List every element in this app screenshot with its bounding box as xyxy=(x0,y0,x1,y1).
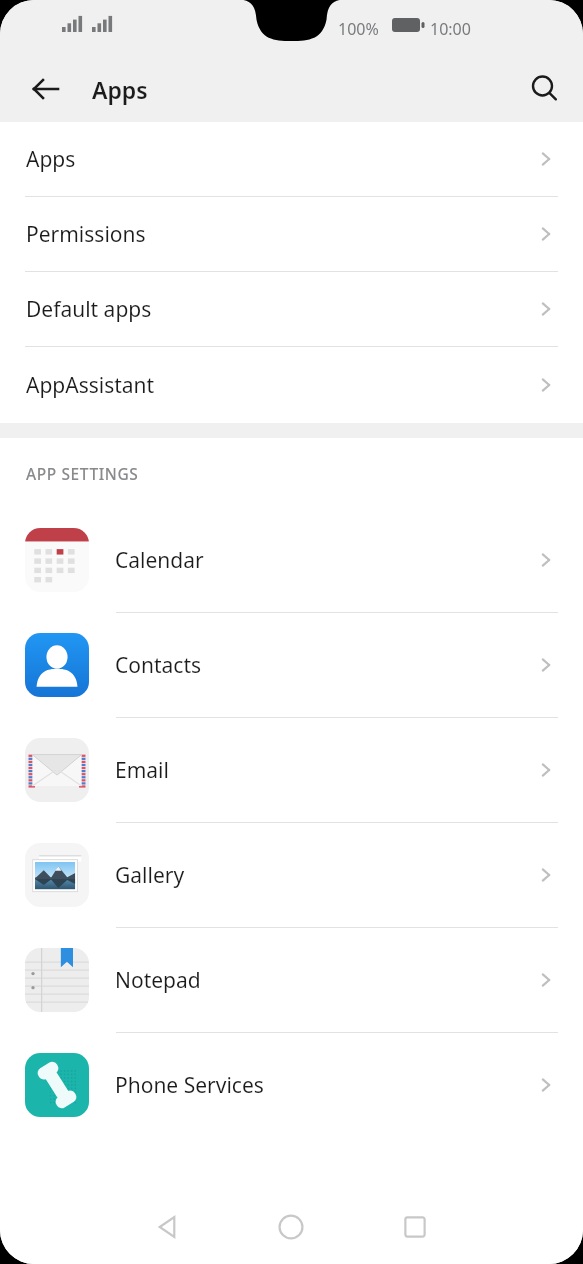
button[interactable]: Calendar xyxy=(0,508,583,613)
staticText: Default apps xyxy=(26,295,152,324)
button[interactable]: Permissions xyxy=(0,197,583,272)
staticText: Phone Services xyxy=(115,1071,536,1100)
button[interactable]: Contacts xyxy=(0,613,583,718)
staticText: 10:00 xyxy=(430,18,471,40)
button[interactable]: Back xyxy=(22,65,70,113)
button[interactable]: AppAssistant xyxy=(0,347,583,423)
staticText: 100% xyxy=(338,18,379,40)
staticText: Permissions xyxy=(26,220,146,249)
button[interactable]: Search xyxy=(521,65,569,113)
staticText: APP SETTINGS xyxy=(26,463,139,484)
staticText: AppAssistant xyxy=(26,371,155,400)
button[interactable]: Notepad xyxy=(0,928,583,1033)
staticText: Apps xyxy=(26,145,76,174)
staticText: Email xyxy=(115,756,536,785)
button[interactable]: Phone Services xyxy=(0,1033,583,1137)
button[interactable]: Email xyxy=(0,718,583,823)
staticText: Gallery xyxy=(115,861,536,890)
button[interactable]: Default apps xyxy=(0,272,583,347)
staticText: Calendar xyxy=(115,546,536,575)
staticText: Notepad xyxy=(115,966,536,995)
button[interactable]: Back xyxy=(135,1195,199,1259)
staticText: Contacts xyxy=(115,651,536,680)
button[interactable]: Gallery xyxy=(0,823,583,928)
button[interactable]: Home xyxy=(259,1195,323,1259)
staticText: Apps xyxy=(92,74,148,105)
button[interactable]: Apps xyxy=(0,122,583,197)
button[interactable]: Recent apps xyxy=(383,1195,447,1259)
